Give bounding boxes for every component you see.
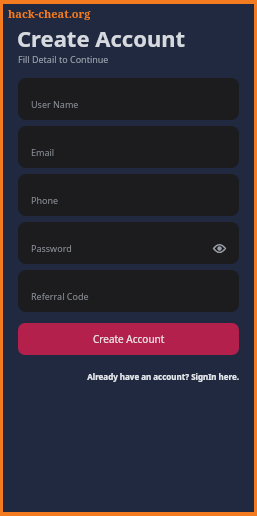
button[interactable]: Show password [210,239,228,257]
button[interactable]: Phone [18,174,239,216]
staticText: Referral Code [31,290,89,302]
staticText: Create Account [93,332,165,346]
staticText: Phone [31,194,59,206]
staticText: hack-cheat.org [8,6,91,21]
button[interactable]: Password [18,222,239,264]
staticText: Password [31,242,72,254]
button[interactable]: Referral Code [18,270,239,312]
button[interactable]: Create Account [18,323,239,355]
button[interactable]: Already have an account? SignIn here. [87,371,239,382]
button[interactable]: Email [18,126,239,168]
button[interactable]: User Name [18,78,239,120]
staticText: Already have an account? SignIn here. [87,371,239,382]
staticText: Fill Detail to Continue [18,53,109,65]
staticText: Email [31,146,55,158]
staticText: Create Account [17,23,186,53]
staticText: User Name [31,98,79,110]
